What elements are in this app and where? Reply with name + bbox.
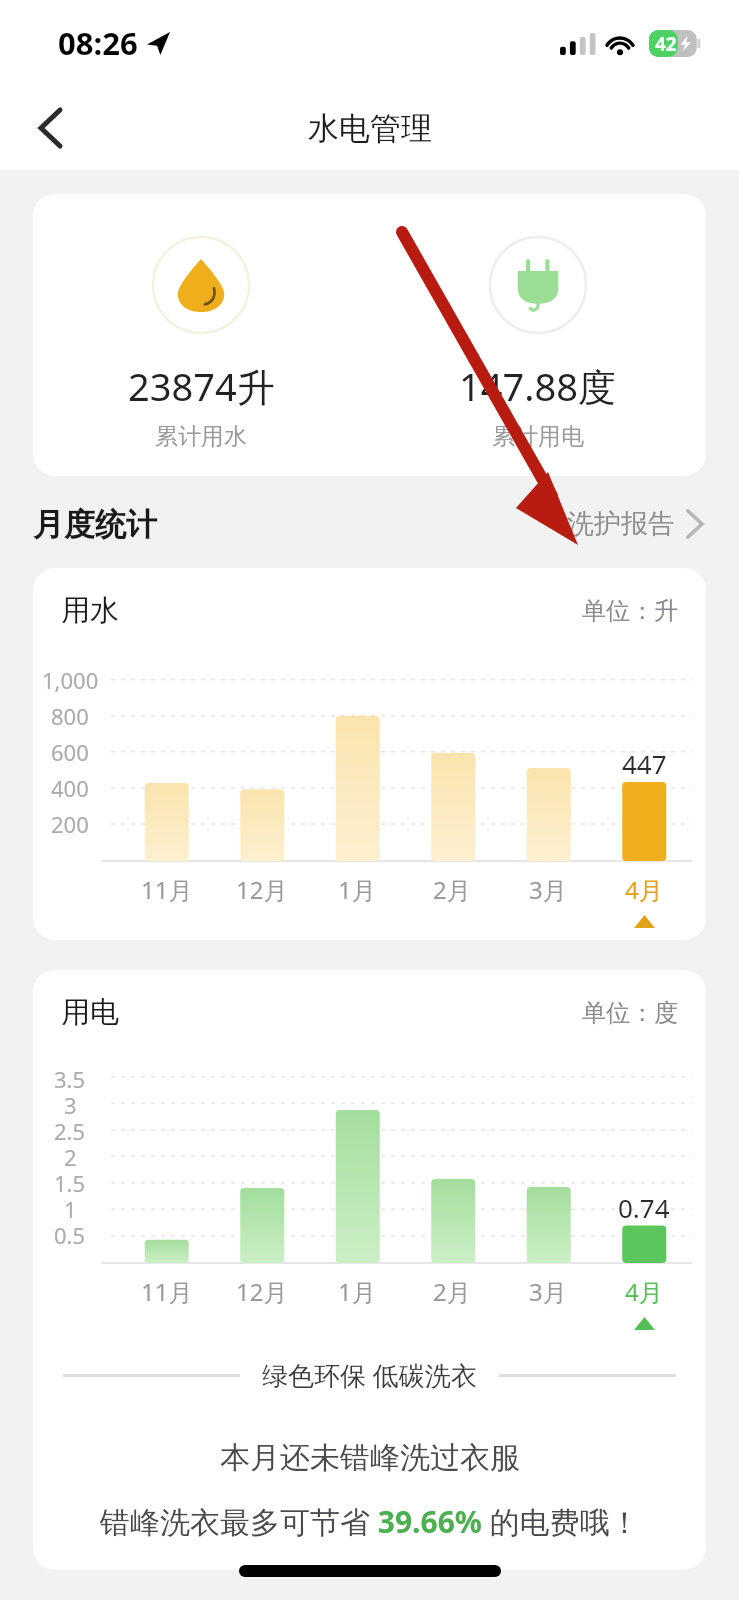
staticText: 23874升: [128, 360, 275, 412]
staticText: 0.74: [618, 1190, 670, 1225]
staticText: 800: [51, 701, 89, 731]
staticText: 用电: [61, 994, 119, 1031]
staticText: 3月: [529, 873, 567, 906]
staticText: 累计用电: [492, 422, 584, 451]
staticText: 12月: [236, 873, 288, 906]
button[interactable]: 23874升: [33, 194, 369, 476]
staticText: 1月: [338, 873, 376, 906]
staticText: 错峰洗衣最多可节省 39.66% 的电费哦！: [100, 1501, 640, 1542]
staticText: 0.5: [54, 1220, 86, 1246]
staticText: 用水: [61, 592, 119, 629]
staticText: 447: [622, 746, 667, 781]
staticText: 水电管理: [308, 109, 432, 148]
staticText: 洗护报告: [567, 507, 675, 541]
staticText: 单位：度: [582, 998, 678, 1028]
staticText: 600: [51, 737, 89, 767]
staticText: 3.5: [54, 1064, 86, 1090]
staticText: 累计用水: [155, 422, 247, 451]
staticText: 11月: [141, 873, 193, 906]
staticText: 单位：升: [582, 596, 678, 626]
staticText: 2: [64, 1142, 77, 1168]
staticText: 1,000: [42, 665, 99, 695]
staticText: 月度统计: [33, 505, 157, 544]
staticText: 1月: [338, 1275, 376, 1308]
button[interactable]: Back: [14, 92, 86, 164]
staticText: (本地错峰用电时间：22:00-次日8:00): [155, 1564, 584, 1570]
staticText: 400: [51, 773, 89, 803]
staticText: 200: [51, 809, 89, 839]
staticText: 4月: [625, 873, 663, 906]
staticText: 2月: [433, 873, 471, 906]
button[interactable]: 用电: [33, 970, 706, 1570]
staticText: 1: [64, 1194, 77, 1220]
staticText: 本月还未错峰洗过衣服: [220, 1439, 520, 1477]
button[interactable]: 147.88度: [369, 194, 706, 476]
staticText: 42: [655, 31, 677, 57]
staticText: 11月: [141, 1275, 193, 1308]
staticText: 08:26: [58, 22, 138, 64]
staticText: 绿色环保 低碳洗衣: [262, 1357, 477, 1393]
staticText: 4月: [625, 1275, 663, 1308]
staticText: 12月: [236, 1275, 288, 1308]
button[interactable]: 洗护报告: [563, 499, 706, 549]
staticText: 2月: [433, 1275, 471, 1308]
staticText: 147.88度: [459, 360, 616, 412]
staticText: 3: [64, 1090, 77, 1116]
staticText: 3月: [529, 1275, 567, 1308]
staticText: 1.5: [54, 1168, 86, 1194]
button[interactable]: 用水: [33, 568, 706, 940]
staticText: 2.5: [54, 1116, 86, 1142]
